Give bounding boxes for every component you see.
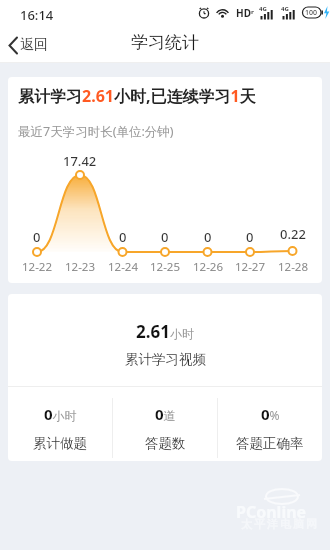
staticText: 0: [119, 228, 127, 246]
staticText: 2.61小时: [136, 320, 194, 343]
staticText: 12-27: [235, 259, 266, 275]
staticText: 累计学习视频: [125, 351, 206, 368]
staticText: 12-26: [193, 259, 224, 275]
staticText: 16:14: [20, 6, 54, 24]
staticText: HDʳ: [236, 6, 254, 20]
staticText: 太平洋电脑网: [240, 517, 318, 531]
button[interactable]: 0小时: [8, 404, 112, 452]
staticText: 0%: [261, 404, 280, 424]
staticText: 0道: [155, 404, 176, 424]
button[interactable]: 0道: [113, 404, 217, 452]
button[interactable]: 返回: [5, 33, 48, 57]
staticText: 12-24: [108, 259, 139, 275]
staticText: 4G: [281, 5, 289, 13]
staticText: 累计做题: [33, 435, 87, 452]
staticText: 0: [161, 228, 169, 246]
staticText: 最近7天学习时长(单位:分钟): [18, 123, 174, 140]
staticText: PConline: [236, 501, 307, 523]
staticText: 答题正确率: [236, 435, 304, 452]
button[interactable]: 0%: [218, 404, 322, 452]
staticText: 返回: [20, 36, 48, 54]
staticText: 答题数: [145, 435, 186, 452]
staticText: 12-28: [278, 259, 309, 275]
staticText: 0: [204, 228, 212, 246]
staticText: 0: [33, 228, 41, 246]
staticText: 12-22: [22, 259, 53, 275]
staticText: 12-23: [65, 259, 96, 275]
staticText: 4G: [259, 5, 267, 13]
staticText: 12-25: [150, 259, 181, 275]
staticText: 0: [246, 228, 254, 246]
staticText: 100: [305, 8, 318, 18]
staticText: 0.22: [280, 225, 306, 243]
staticText: 0小时: [44, 404, 77, 424]
staticText: 累计学习2.61小时,已连续学习1天: [18, 85, 256, 107]
staticText: 17.42: [63, 152, 97, 170]
staticText: 学习统计: [131, 32, 199, 53]
